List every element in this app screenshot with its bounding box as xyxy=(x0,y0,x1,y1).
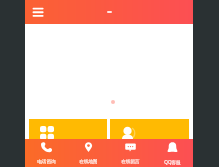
button[interactable]: 在线地图 xyxy=(67,139,109,167)
button[interactable]: Customer service xyxy=(110,119,189,139)
staticText: 在线地图 xyxy=(79,159,98,165)
button[interactable]: QQ客服 xyxy=(151,139,193,167)
button[interactable]: 在线留言 xyxy=(109,139,151,167)
staticText: 电话咨询 xyxy=(37,159,56,165)
button[interactable]: Open navigation menu xyxy=(30,0,48,24)
button[interactable]: Products xyxy=(29,119,107,139)
staticText: QQ客服 xyxy=(164,159,181,165)
button[interactable]: 电话咨询 xyxy=(25,139,67,167)
staticText: 在线留言 xyxy=(121,159,140,165)
